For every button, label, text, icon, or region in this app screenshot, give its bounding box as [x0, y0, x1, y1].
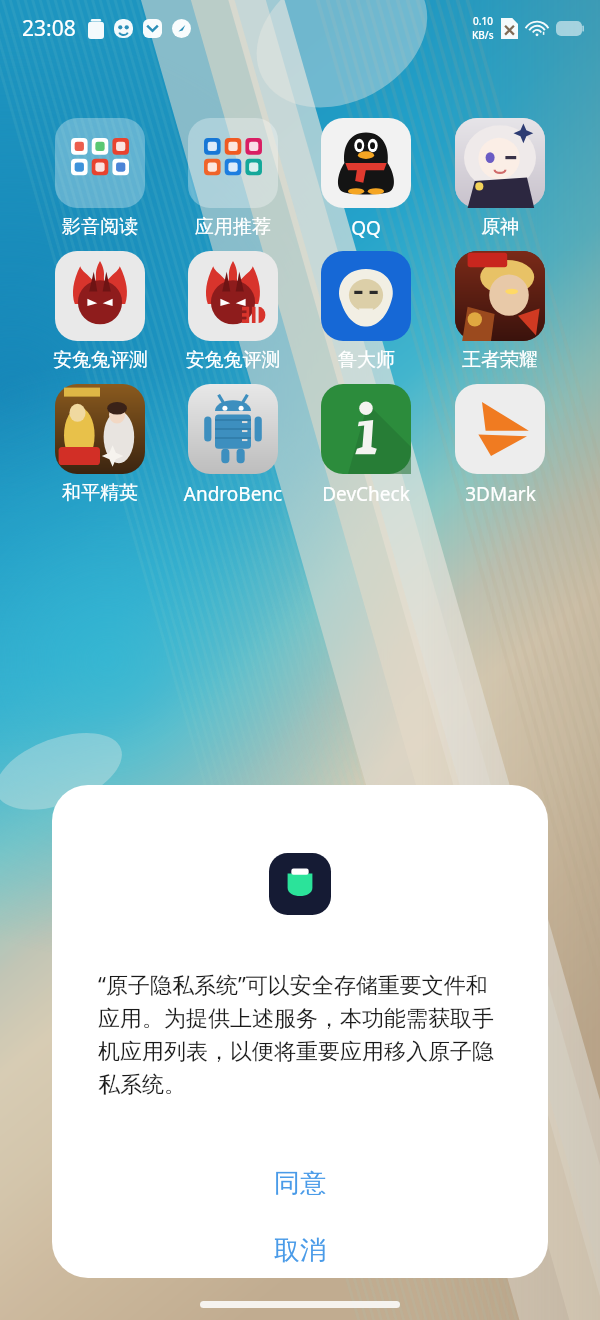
staticText: 和平精英 [62, 481, 138, 505]
staticText: 原神 [481, 215, 519, 239]
staticText: 同意 [274, 1167, 326, 1200]
button[interactable]: 安兔兔评测3D [180, 247, 286, 372]
button[interactable]: AndroBench [180, 380, 286, 507]
button[interactable]: 取消 [52, 1222, 548, 1278]
staticText: 23:08 [22, 14, 76, 43]
staticText: 安兔兔评测3D [180, 348, 286, 372]
staticText: 3DMark [465, 481, 536, 507]
button[interactable]: 3DMark [447, 380, 553, 507]
staticText: KB/s [472, 28, 494, 42]
staticText: 鲁大师 [338, 348, 395, 372]
staticText: AndroBench [180, 481, 286, 507]
button[interactable]: 安兔兔评测 [47, 247, 153, 372]
button[interactable]: 王者荣耀 [447, 247, 553, 372]
staticText: 应用推荐 [195, 215, 271, 239]
button[interactable]: DevCheck [313, 380, 419, 507]
button[interactable]: 同意 [52, 1144, 548, 1222]
button[interactable]: 应用推荐 [180, 114, 286, 239]
button[interactable]: 影音阅读 [47, 114, 153, 239]
staticText: 王者荣耀 [462, 348, 538, 372]
staticText: QQ [351, 215, 381, 241]
staticText: 取消 [274, 1234, 326, 1267]
staticText: “原子隐私系统”可以安全存储重要文件和应用。为提供上述服务，本功能需获取手机应用… [98, 969, 502, 1098]
staticText: 影音阅读 [62, 215, 138, 239]
button[interactable]: QQ [313, 114, 419, 241]
staticText: DevCheck [322, 481, 410, 507]
button[interactable]: 和平精英 [47, 380, 153, 505]
staticText: 安兔兔评测 [53, 348, 148, 372]
button[interactable]: 原神 [447, 114, 553, 239]
button[interactable]: 鲁大师 [313, 247, 419, 372]
staticText: 0.10 [473, 14, 493, 28]
